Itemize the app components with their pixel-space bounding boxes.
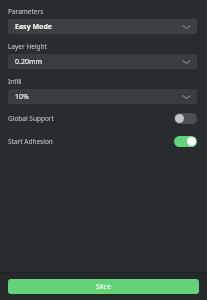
staticText: Start Adhesion <box>8 137 174 146</box>
button[interactable]: Global Support <box>174 113 197 124</box>
staticText: Global Support <box>8 114 174 123</box>
staticText: 10% <box>15 92 29 102</box>
button[interactable]: 10% <box>8 89 197 104</box>
staticText: Slice <box>96 282 111 292</box>
button[interactable]: Slice <box>8 279 199 294</box>
button[interactable]: Easy Mode <box>8 19 197 34</box>
button[interactable]: 0.20mm <box>8 54 197 69</box>
staticText: Parameters <box>8 7 44 16</box>
button[interactable]: Start Adhesion <box>8 131 197 151</box>
staticText: Layer Height <box>8 42 47 51</box>
button[interactable]: Start Adhesion <box>174 136 197 147</box>
staticText: 0.20mm <box>15 57 42 67</box>
button[interactable]: Global Support <box>8 108 197 128</box>
staticText: Easy Mode <box>15 22 53 32</box>
staticText: Infill <box>8 77 22 86</box>
